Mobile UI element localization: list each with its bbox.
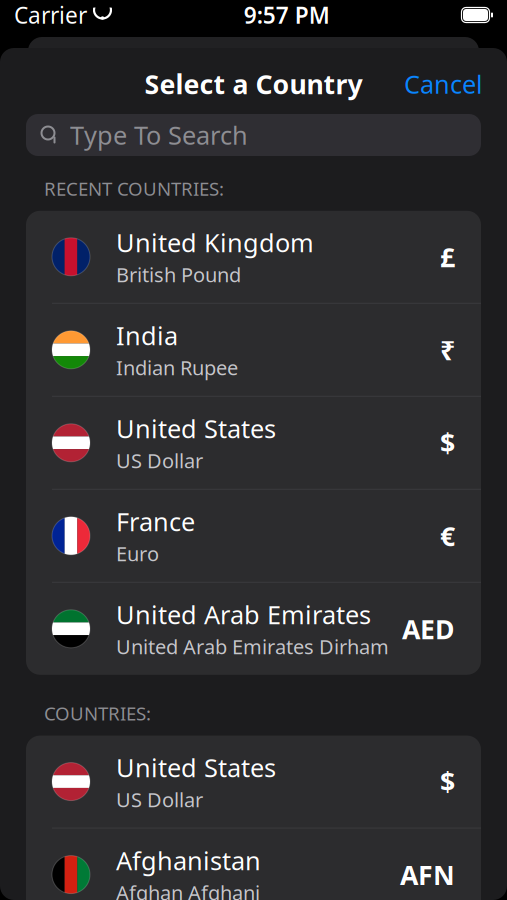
button[interactable]: United States [26,397,481,489]
staticText: COUNTRIES: [44,701,151,726]
button[interactable]: India [26,304,481,396]
staticText: £ [440,239,455,274]
button[interactable]: United States [26,736,481,828]
staticText: British Pound [116,261,241,288]
staticText: France [116,505,195,538]
staticText: US Dollar [116,447,203,474]
staticText: US Dollar [116,786,203,813]
staticText: ₹ [440,332,455,367]
staticText: Afghanistan [116,843,261,877]
staticText: $ [440,764,455,799]
staticText: € [440,518,455,553]
button[interactable]: United Arab Emirates [26,583,481,675]
staticText: Select a Country [144,66,362,102]
staticText: United Kingdom [116,226,314,259]
staticText: $ [440,425,455,460]
staticText: RECENT COUNTRIES: [44,176,224,201]
staticText: United Arab Emirates Dirham [116,633,389,660]
staticText: AFN [400,857,455,892]
staticText: AED [402,611,455,646]
staticText: Euro [116,540,159,567]
button[interactable]: Afghanistan [26,829,481,900]
staticText: United States [116,412,276,445]
staticText: Indian Rupee [116,354,238,381]
staticText: India [116,319,178,352]
staticText: 9:57 PM [244,0,330,30]
button[interactable]: France [26,490,481,582]
staticText: United States [116,750,276,784]
button[interactable]: Cancel [394,59,493,109]
staticText: Carrier [14,0,87,30]
staticText: Cancel [404,67,483,101]
staticText: United Arab Emirates [116,598,371,631]
button[interactable]: United Kingdom [26,211,481,303]
staticText: Type To Search [70,118,248,152]
button[interactable]: Type To Search [26,114,481,156]
staticText: Afghan Afghani [116,879,260,900]
